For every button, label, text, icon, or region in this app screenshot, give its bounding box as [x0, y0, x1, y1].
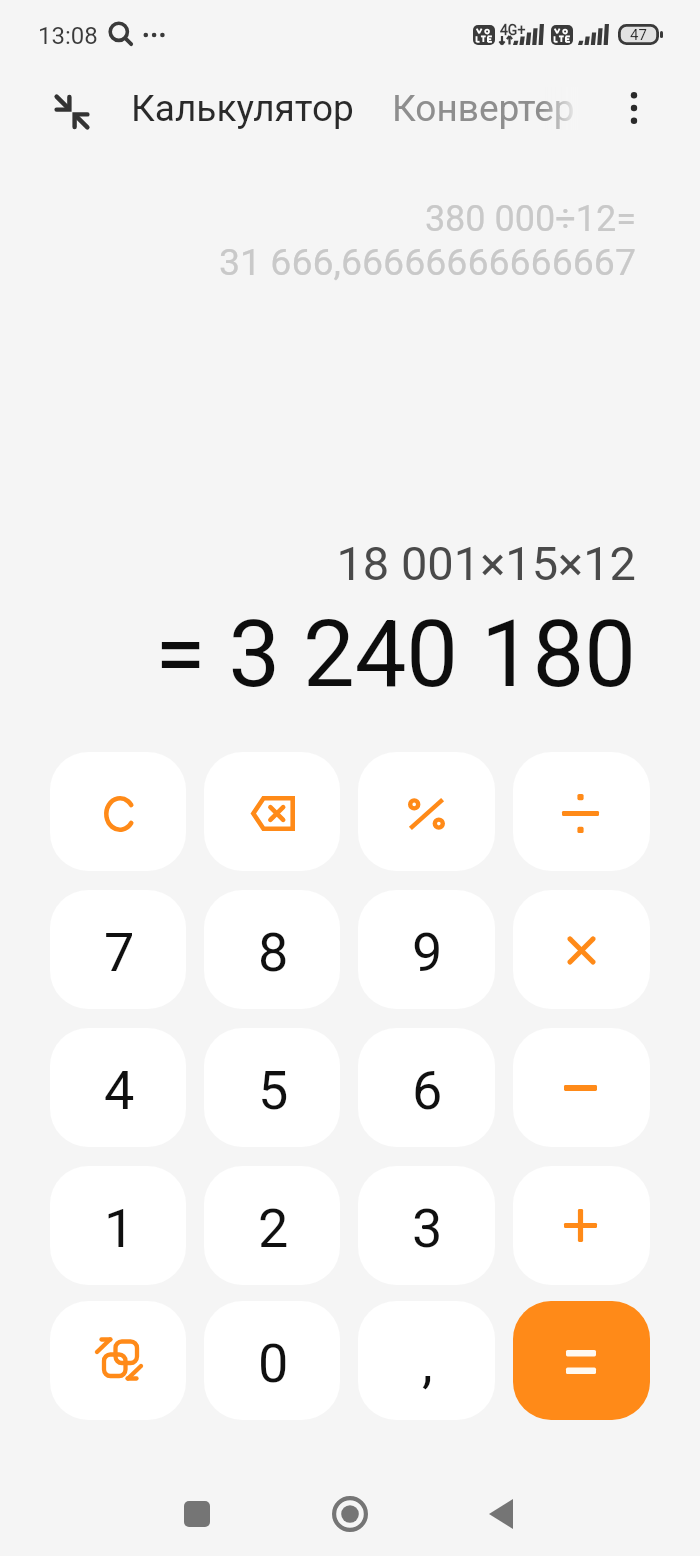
button[interactable]: multiply: [513, 890, 650, 1009]
staticText: 4: [104, 1059, 135, 1122]
button[interactable]: More options: [606, 80, 662, 136]
staticText: 7: [104, 921, 135, 984]
button[interactable]: comma: [358, 1301, 495, 1420]
staticText: 1: [104, 1197, 135, 1260]
staticText: 47: [630, 26, 647, 44]
staticText: 13:08: [38, 22, 98, 50]
button[interactable]: Back: [461, 1474, 541, 1554]
button[interactable]: percent: [358, 752, 495, 871]
staticText: 9: [412, 921, 443, 984]
button[interactable]: 0: [204, 1301, 340, 1420]
staticText: 380 000÷12=: [424, 198, 636, 240]
button[interactable]: clear: [50, 752, 186, 871]
button[interactable]: 6: [358, 1028, 495, 1147]
button[interactable]: 9: [358, 890, 495, 1009]
button[interactable]: Home: [310, 1474, 390, 1554]
button[interactable]: plus: [513, 1166, 650, 1285]
button[interactable]: convert: [50, 1301, 186, 1420]
button[interactable]: Конвертер: [392, 87, 580, 130]
staticText: 31 666,66666666666667: [218, 240, 636, 284]
button[interactable]: backspace: [204, 752, 340, 871]
button[interactable]: Collapse: [44, 84, 100, 140]
staticText: 4G+: [500, 22, 526, 38]
staticText: 5: [258, 1059, 289, 1122]
staticText: 6: [412, 1059, 443, 1122]
button[interactable]: 3: [358, 1166, 495, 1285]
button[interactable]: divide: [513, 752, 650, 871]
staticText: 18 001×15×12: [336, 536, 636, 591]
staticText: Калькулятор: [131, 87, 354, 130]
button[interactable]: 5: [204, 1028, 340, 1147]
button[interactable]: minus: [513, 1028, 650, 1147]
staticText: 2: [258, 1197, 289, 1260]
button[interactable]: 8: [204, 890, 340, 1009]
button[interactable]: 7: [50, 890, 186, 1009]
button[interactable]: equals: [513, 1301, 650, 1420]
staticText: Конвертер: [392, 87, 575, 130]
staticText: 0: [258, 1332, 289, 1395]
button[interactable]: Калькулятор: [131, 87, 354, 130]
staticText: 8: [258, 921, 289, 984]
button[interactable]: 4: [50, 1028, 186, 1147]
staticText: ,: [422, 1332, 433, 1395]
staticText: = 3 240 180: [155, 601, 636, 709]
staticText: 3: [412, 1197, 443, 1260]
button[interactable]: 1: [50, 1166, 186, 1285]
button[interactable]: Recent apps: [157, 1474, 237, 1554]
button[interactable]: 2: [204, 1166, 340, 1285]
